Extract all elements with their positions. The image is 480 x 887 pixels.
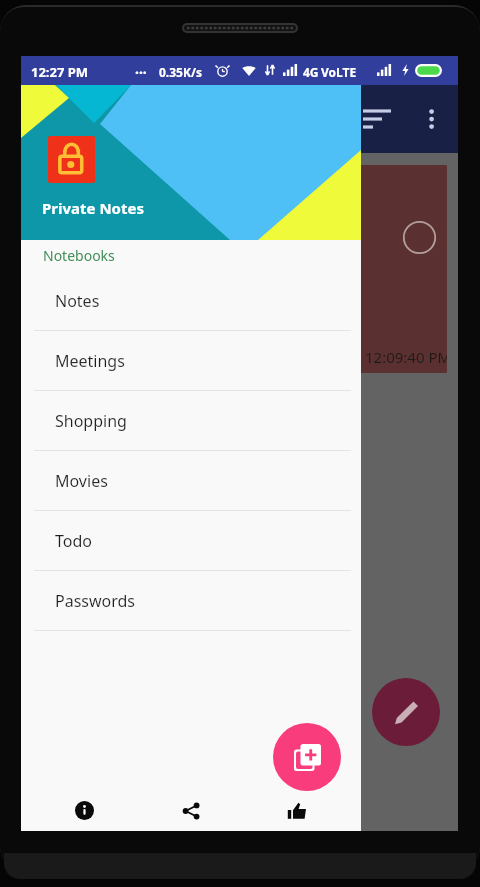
- button[interactable]: Share: [138, 790, 244, 831]
- button[interactable]: Add notebook: [273, 723, 341, 791]
- staticText: Notebooks: [43, 246, 115, 265]
- staticText: Passwords: [55, 590, 136, 612]
- button[interactable]: Sort: [363, 104, 393, 134]
- staticText: Shopping: [55, 410, 127, 432]
- staticText: 12:09:40 PM: [365, 347, 447, 367]
- button[interactable]: Like: [244, 790, 350, 831]
- staticText: Private Notes: [42, 198, 144, 218]
- staticText: ...: [135, 59, 147, 78]
- staticText: 4G: [303, 64, 319, 80]
- staticText: 12:27 PM: [31, 63, 89, 81]
- button[interactable]: Passwords: [21, 571, 361, 630]
- staticText: Meetings: [55, 350, 125, 372]
- button[interactable]: More options: [419, 104, 444, 129]
- staticText: Notes: [55, 290, 100, 312]
- button[interactable]: Todo: [21, 511, 361, 570]
- button[interactable]: Movies: [21, 451, 361, 510]
- button[interactable]: Create note: [372, 678, 440, 746]
- staticText: Movies: [55, 470, 108, 492]
- staticText: Todo: [55, 530, 92, 552]
- button[interactable]: Notes: [21, 271, 361, 330]
- button[interactable]: Meetings: [21, 331, 361, 390]
- button[interactable]: Information: [31, 790, 138, 831]
- staticText: VoLTE: [321, 64, 357, 80]
- button[interactable]: Shopping: [21, 391, 361, 450]
- staticText: 0.35K/s: [159, 64, 202, 80]
